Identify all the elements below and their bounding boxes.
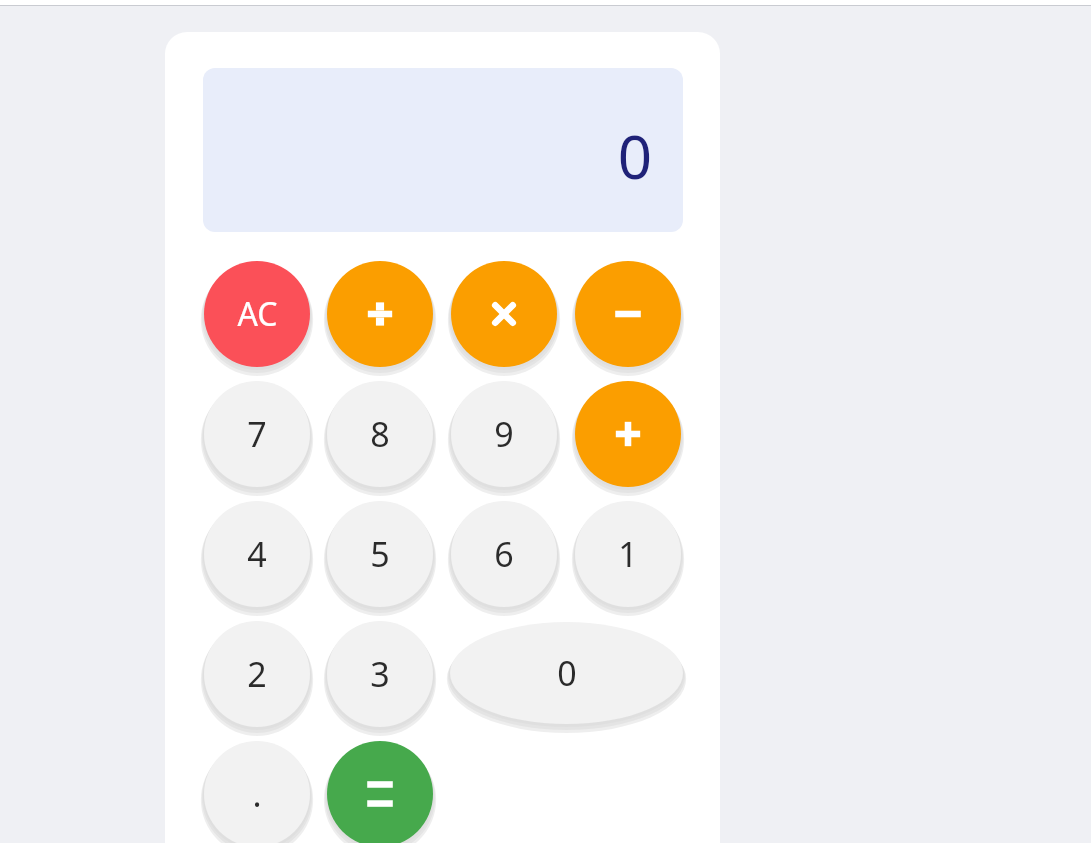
button[interactable]: Subtract (575, 261, 681, 367)
staticText: 7 (247, 411, 267, 457)
staticText: 8 (370, 411, 390, 457)
button[interactable]: 0 (450, 622, 683, 724)
staticText: 2 (247, 651, 267, 697)
button[interactable]: . (204, 741, 310, 843)
button[interactable]: 3 (327, 621, 433, 727)
button[interactable]: Add (575, 381, 681, 487)
staticText: 0 (617, 115, 652, 197)
button[interactable]: 1 (575, 501, 681, 607)
staticText: 3 (370, 651, 390, 697)
button[interactable]: 9 (451, 381, 557, 487)
staticText: 4 (247, 531, 267, 577)
staticText: 9 (494, 411, 514, 457)
button[interactable]: 6 (451, 501, 557, 607)
button[interactable]: 4 (204, 501, 310, 607)
button[interactable]: 5 (327, 501, 433, 607)
staticText: . (252, 771, 262, 817)
button[interactable]: Divide (327, 261, 433, 367)
button[interactable]: 2 (204, 621, 310, 727)
button[interactable]: 7 (204, 381, 310, 487)
button[interactable]: Equals (327, 741, 433, 843)
staticText: 5 (370, 531, 390, 577)
staticText: 0 (557, 650, 577, 696)
staticText: 6 (494, 531, 514, 577)
button[interactable]: AC (204, 261, 310, 367)
staticText: AC (237, 292, 278, 336)
button[interactable]: Multiply (451, 261, 557, 367)
staticText: 1 (618, 531, 638, 577)
button[interactable]: 8 (327, 381, 433, 487)
